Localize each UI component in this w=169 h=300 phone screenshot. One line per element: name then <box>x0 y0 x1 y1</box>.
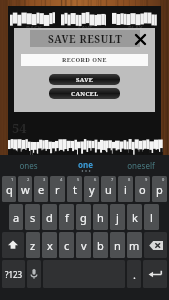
button[interactable]: . <box>127 260 141 288</box>
button[interactable]: Shift <box>2 232 24 258</box>
button[interactable]: k <box>127 204 142 230</box>
staticText: f <box>65 210 69 225</box>
staticText: c <box>64 238 70 253</box>
staticText: l <box>150 210 153 225</box>
button[interactable]: ones <box>0 155 57 175</box>
staticText: 8 <box>128 177 131 182</box>
staticText: PLAY <box>128 24 143 32</box>
staticText: 4 <box>60 177 63 182</box>
button[interactable]: m <box>127 232 142 258</box>
button[interactable]: j <box>110 204 125 230</box>
button[interactable]: ?123 <box>2 260 25 288</box>
staticText: j <box>116 210 119 225</box>
staticText: 54 <box>12 119 27 137</box>
button[interactable]: h <box>93 204 108 230</box>
staticText: m <box>129 238 140 253</box>
button[interactable]: one <box>57 155 113 175</box>
staticText: 3 <box>43 177 46 182</box>
button[interactable]: Backspace <box>144 232 167 258</box>
staticText: 0 <box>162 177 165 182</box>
staticText: q <box>6 182 13 197</box>
staticText: SAVE <box>76 76 94 84</box>
button[interactable]: v <box>76 232 91 258</box>
button[interactable]: n <box>110 232 125 258</box>
staticText: 7 <box>111 177 114 182</box>
staticText: k <box>132 210 138 225</box>
staticText: x <box>47 238 53 253</box>
staticText: ones <box>19 160 38 171</box>
staticText: o <box>139 182 146 197</box>
button[interactable]: s <box>25 204 40 230</box>
staticText: r <box>55 182 60 197</box>
staticText: oneself <box>127 160 155 171</box>
staticText: RECORD ONE <box>62 56 107 64</box>
staticText: y <box>89 182 95 197</box>
staticText: s <box>30 210 36 225</box>
button[interactable]: d <box>42 204 57 230</box>
button[interactable]: 2 <box>18 176 32 202</box>
button[interactable]: 0 <box>152 176 167 202</box>
staticText: CANCEL <box>71 90 99 98</box>
button[interactable]: a <box>9 204 23 230</box>
staticText: h <box>97 210 104 225</box>
staticText: 9 <box>145 177 148 182</box>
button[interactable]: l <box>144 204 159 230</box>
button[interactable]: 3 <box>34 176 48 202</box>
staticText: SAVE <box>78 24 93 32</box>
staticText: g <box>80 210 87 225</box>
button[interactable]: g <box>76 204 91 230</box>
staticText: u <box>105 182 112 197</box>
button[interactable]: oneself <box>113 155 169 175</box>
staticText: . <box>133 267 136 282</box>
button[interactable]: 9 <box>135 176 150 202</box>
staticText: d <box>46 210 53 225</box>
staticText: one <box>78 159 93 170</box>
staticText: b <box>97 238 104 253</box>
staticText: t <box>73 182 77 197</box>
staticText: ?123 <box>5 269 23 280</box>
button[interactable]: 4 <box>50 176 65 202</box>
button[interactable]: 8 <box>118 176 133 202</box>
button[interactable]: c <box>59 232 74 258</box>
button[interactable]: 6 <box>84 176 99 202</box>
staticText: p <box>156 182 163 197</box>
button[interactable]: b <box>93 232 108 258</box>
staticText: 5 <box>77 177 80 182</box>
button[interactable]: 5 <box>67 176 82 202</box>
button[interactable]: CANCEL <box>49 88 120 99</box>
staticText: a <box>13 210 20 225</box>
button[interactable]: Voice input <box>27 260 41 288</box>
button[interactable]: RECORD ONE <box>21 54 148 66</box>
staticText: 2 <box>27 177 30 182</box>
button[interactable]: Close <box>133 32 147 46</box>
button[interactable]: Enter <box>143 260 167 288</box>
staticText: 6 <box>94 177 97 182</box>
staticText: BACK <box>26 24 42 32</box>
button[interactable]: x <box>42 232 57 258</box>
staticText: z <box>30 238 36 253</box>
staticText: n <box>114 238 121 253</box>
staticText: SAVE RESULT <box>48 32 123 46</box>
button[interactable]: z <box>26 232 40 258</box>
button[interactable]: f <box>59 204 74 230</box>
staticText: 1 <box>11 177 14 182</box>
button[interactable]: 7 <box>101 176 116 202</box>
button[interactable]: 1 <box>2 176 16 202</box>
staticText: e <box>38 182 45 197</box>
button[interactable]: SAVE <box>49 74 120 85</box>
staticText: i <box>124 182 127 197</box>
staticText: w <box>21 182 30 197</box>
staticText: v <box>81 238 87 253</box>
